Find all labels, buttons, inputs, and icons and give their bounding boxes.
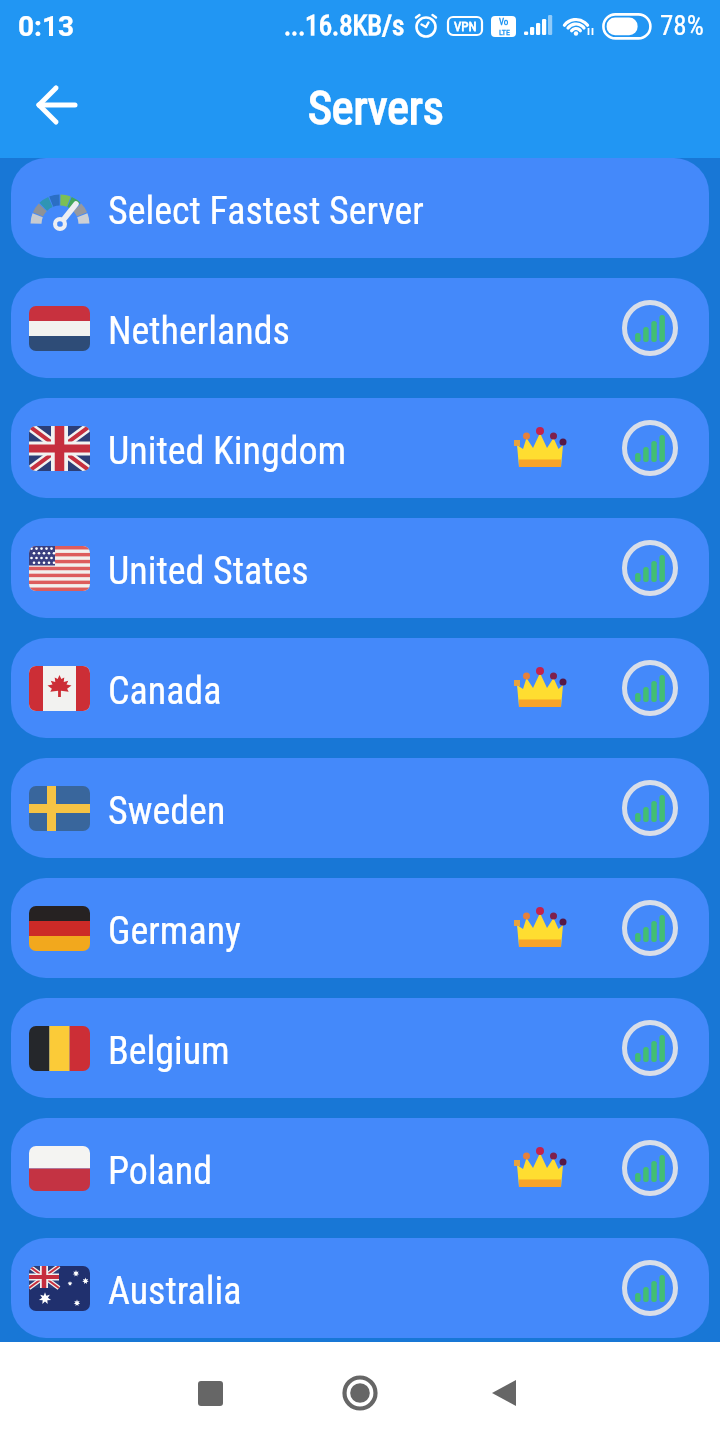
- button[interactable]: [38, 85, 78, 125]
- staticText: United Kingdom: [108, 429, 347, 474]
- button[interactable]: United States: [11, 518, 709, 618]
- button[interactable]: [198, 1381, 223, 1406]
- staticText: United States: [108, 549, 309, 594]
- button[interactable]: United Kingdom: [11, 398, 709, 498]
- button[interactable]: Canada: [11, 638, 709, 738]
- button[interactable]: Select Fastest Server: [11, 158, 709, 258]
- staticText: Germany: [108, 909, 241, 954]
- staticText: LTE: [499, 28, 510, 37]
- staticText: 0:13: [18, 10, 75, 43]
- staticText: Vo: [499, 17, 509, 28]
- staticText: 78%: [660, 10, 704, 42]
- button[interactable]: Poland: [11, 1118, 709, 1218]
- button[interactable]: [490, 1380, 518, 1408]
- button[interactable]: Germany: [11, 878, 709, 978]
- button[interactable]: Australia: [11, 1238, 709, 1338]
- button[interactable]: Netherlands: [11, 278, 709, 378]
- button[interactable]: Sweden: [11, 758, 709, 858]
- staticText: Select Fastest Server: [108, 189, 424, 234]
- staticText: Poland: [108, 1149, 213, 1194]
- staticText: Servers: [308, 81, 444, 135]
- button[interactable]: Belgium: [11, 998, 709, 1098]
- button[interactable]: [338, 1371, 382, 1415]
- staticText: Netherlands: [108, 309, 290, 354]
- staticText: Belgium: [108, 1029, 230, 1074]
- staticText: ...16.8KB/s: [284, 10, 405, 42]
- staticText: Sweden: [108, 789, 226, 834]
- staticText: Australia: [108, 1269, 242, 1314]
- staticText: VPN: [454, 19, 477, 34]
- staticText: Canada: [108, 669, 222, 714]
